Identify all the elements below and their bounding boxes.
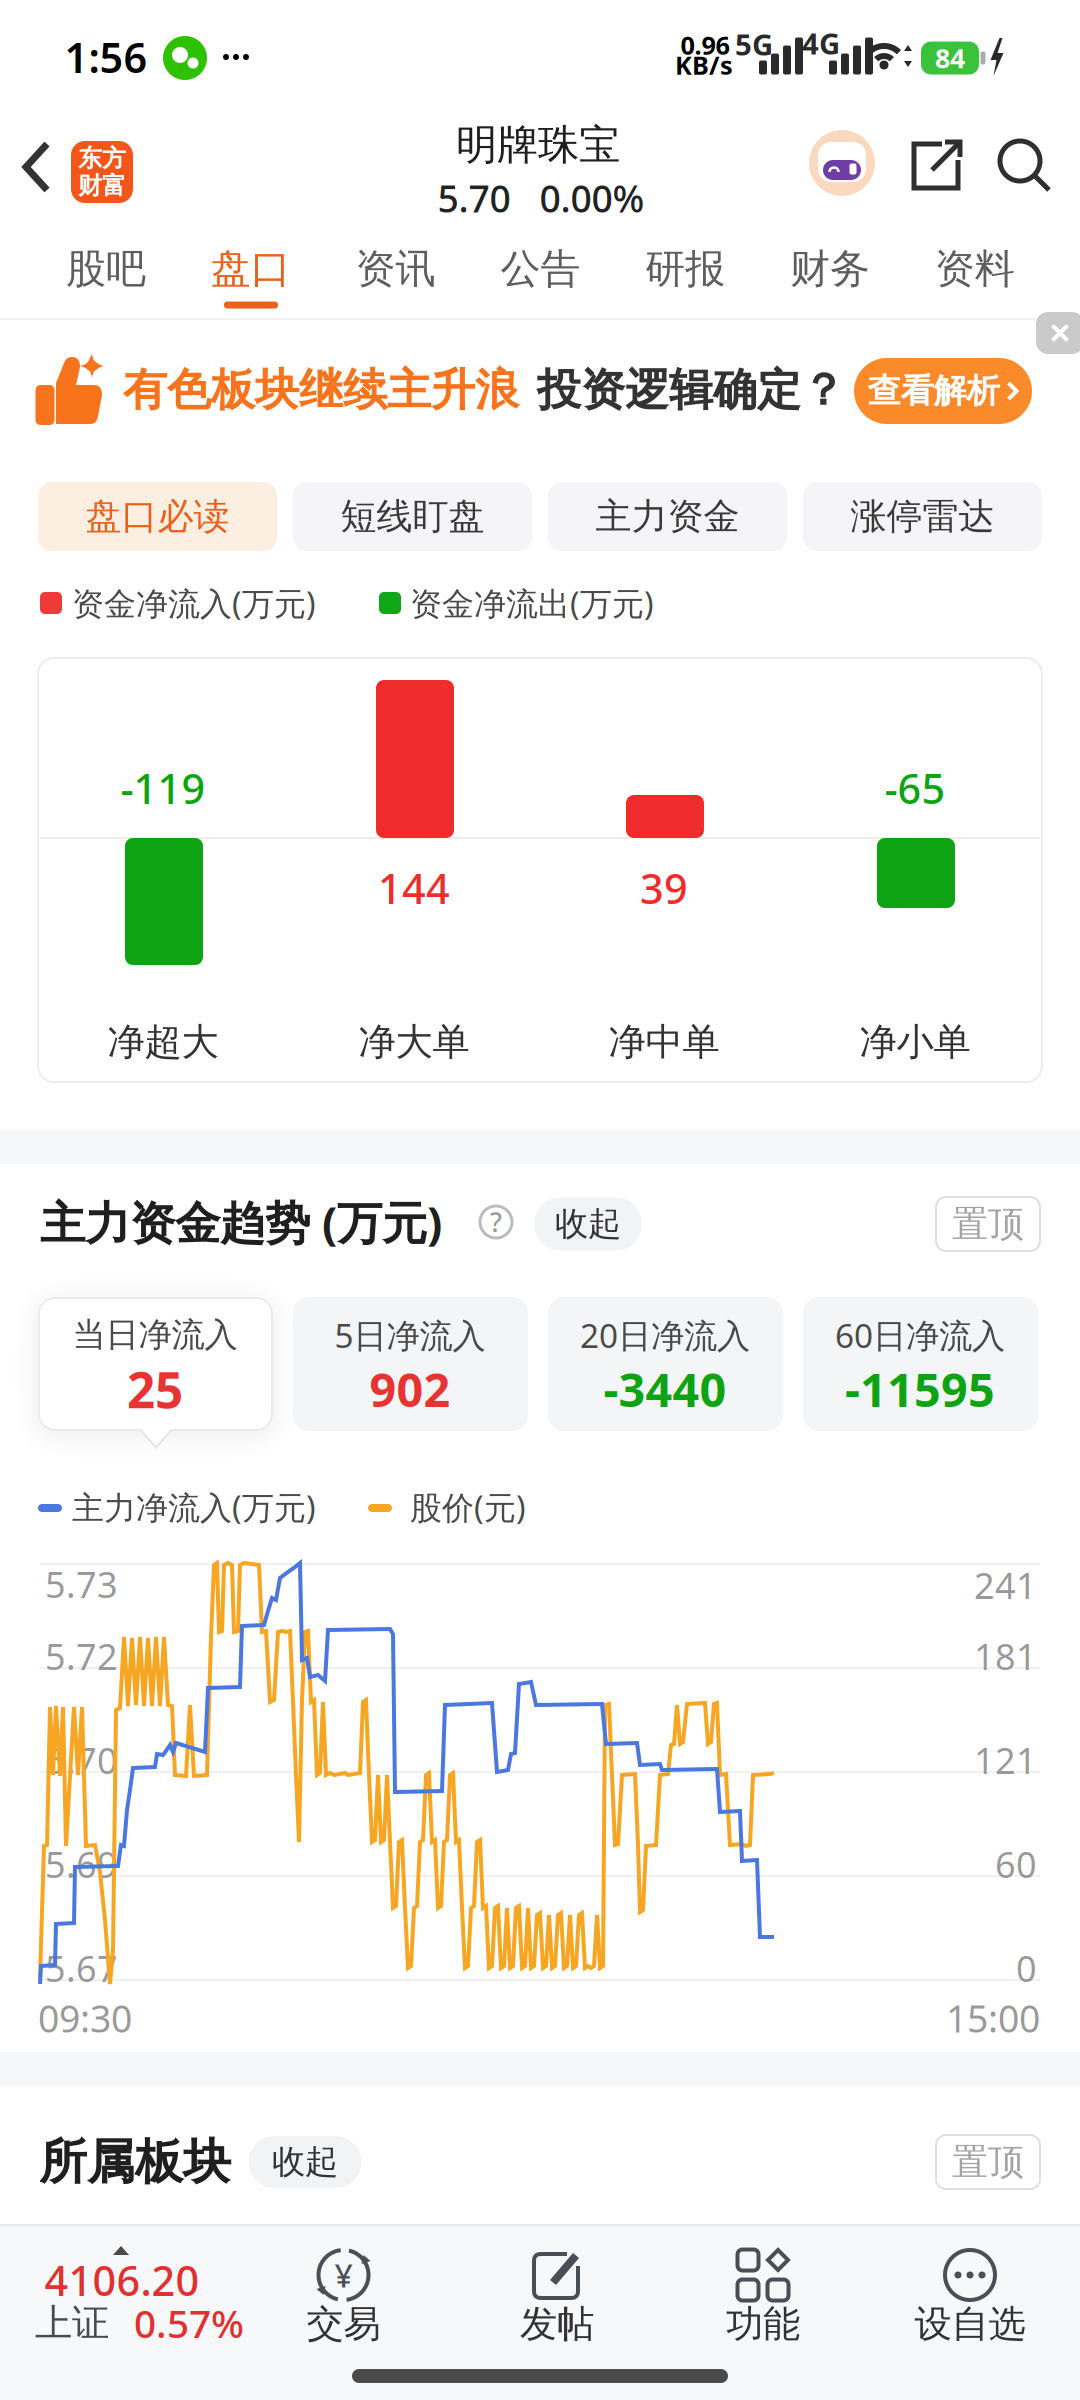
staticText: 4G <box>802 23 840 62</box>
staticText: 5.73 <box>45 1560 118 1608</box>
staticText: 主力资金 <box>595 494 739 539</box>
staticText: 所属板块 <box>39 2132 231 2191</box>
button[interactable]: AI 助手 <box>809 130 875 196</box>
button[interactable]: 盘口 <box>191 229 311 309</box>
button[interactable]: 短线盯盘 <box>293 482 532 551</box>
staticText: 15:00 <box>946 1993 1040 2043</box>
staticText: -11595 <box>845 1358 995 1420</box>
button[interactable]: 盘口必读 <box>38 482 277 551</box>
button[interactable]: ¥ <box>248 2225 438 2375</box>
button[interactable]: 收起 <box>534 1197 642 1250</box>
button[interactable]: 5日净流入 <box>293 1297 528 1431</box>
button[interactable]: 帮助 <box>480 1204 512 1240</box>
button[interactable]: 收起 <box>248 2136 361 2188</box>
staticText: 置顶 <box>952 1202 1024 1246</box>
staticText: -119 <box>120 761 205 815</box>
staticText: 0.00% <box>539 173 644 223</box>
staticText: 盘口 <box>211 244 291 293</box>
button[interactable]: 20日净流入 <box>548 1297 783 1431</box>
button[interactable]: 当日净流入 <box>38 1297 273 1431</box>
staticText: 净中单 <box>608 1019 719 1065</box>
staticText: 20日净流入 <box>580 1313 750 1357</box>
staticText: 短线盯盘 <box>340 494 484 539</box>
staticText: -65 <box>884 761 945 815</box>
staticText: 09:30 <box>38 1993 132 2043</box>
staticText: 25 <box>127 1356 183 1422</box>
staticText: 60日净流入 <box>835 1313 1005 1357</box>
staticText: 902 <box>369 1358 450 1420</box>
staticText: 东方 <box>78 143 126 173</box>
staticText: 0.57% <box>134 2297 244 2349</box>
button[interactable]: Search <box>999 140 1051 192</box>
button[interactable]: Share <box>910 140 962 192</box>
staticText: 净超大 <box>107 1019 218 1065</box>
staticText: 84 <box>935 40 965 76</box>
staticText: 资金净流入(万元) <box>72 582 316 624</box>
button[interactable]: 4106.20 <box>1 2225 269 2400</box>
staticText: 1:56 <box>64 30 147 84</box>
staticText: 财务 <box>790 244 870 293</box>
staticText: 净大单 <box>358 1019 469 1065</box>
button[interactable]: 股吧 <box>46 229 166 309</box>
staticText: 60 <box>995 1840 1037 1888</box>
button[interactable]: 资料 <box>915 229 1035 309</box>
staticText: 241 <box>974 1561 1037 1609</box>
staticText: -3440 <box>603 1358 726 1420</box>
staticText: 设自选 <box>914 2301 1025 2347</box>
staticText: 股价(元) <box>410 1486 526 1528</box>
staticText: 5G <box>735 24 773 63</box>
button[interactable]: 公告 <box>480 229 600 309</box>
button[interactable]: 置顶 <box>936 1197 1040 1251</box>
staticText: 查看解析 <box>867 370 999 411</box>
button[interactable]: 查看解析 <box>854 358 1032 424</box>
staticText: 144 <box>378 861 450 915</box>
staticText: 当日净流入 <box>72 1314 237 1355</box>
staticText: 4106.20 <box>44 2253 199 2307</box>
staticText: 盘口必读 <box>85 494 229 539</box>
staticText: 上证 <box>35 2300 109 2346</box>
staticText: 投资逻辑确定？ <box>537 363 845 417</box>
button[interactable]: 置顶 <box>936 2135 1040 2189</box>
staticText: 收起 <box>272 2141 338 2182</box>
staticText: 181 <box>974 1632 1037 1680</box>
staticText: 资料 <box>935 244 1015 293</box>
staticText: ¥ <box>334 2254 352 2296</box>
staticText: 功能 <box>726 2301 800 2347</box>
button[interactable]: Back <box>23 141 51 193</box>
staticText: 净小单 <box>859 1019 970 1065</box>
button[interactable]: 60日净流入 <box>803 1297 1038 1431</box>
button[interactable]: 功能 <box>668 2225 858 2375</box>
staticText: 股吧 <box>66 244 146 293</box>
staticText: 涨停雷达 <box>850 494 994 539</box>
button[interactable]: 资讯 <box>336 229 456 309</box>
staticText: 5.67 <box>45 1944 118 1992</box>
button[interactable]: 研报 <box>625 229 745 309</box>
staticText: 0 <box>1016 1944 1037 1992</box>
staticText: 置顶 <box>952 2140 1024 2184</box>
staticText: 5.70 <box>45 1736 118 1784</box>
staticText: 5.72 <box>45 1632 118 1680</box>
button[interactable]: 涨停雷达 <box>803 482 1042 551</box>
button[interactable]: 设自选 <box>875 2225 1065 2375</box>
staticText: 明牌珠宝 <box>456 120 620 170</box>
staticText: 公告 <box>500 244 580 293</box>
staticText: 财富 <box>78 171 126 200</box>
staticText: 有色板块继续主升浪 <box>123 363 519 417</box>
staticText: 资讯 <box>356 244 436 293</box>
staticText: 发帖 <box>520 2301 594 2347</box>
staticText: 主力净流入(万元) <box>72 1486 316 1528</box>
button[interactable]: 财务 <box>770 229 890 309</box>
button[interactable]: 主力资金 <box>548 482 787 551</box>
staticText: 0.96 <box>680 28 729 62</box>
button[interactable]: Close <box>1036 312 1080 354</box>
staticText: 资金净流出(万元) <box>410 582 654 624</box>
staticText: 39 <box>640 861 688 915</box>
button[interactable]: 东方财富 <box>71 141 133 203</box>
staticText: ? <box>490 1204 502 1240</box>
staticText: KB/s <box>675 48 733 82</box>
staticText: 交易 <box>306 2301 380 2347</box>
staticText: 5.69 <box>45 1840 118 1888</box>
staticText: 收起 <box>555 1203 621 1244</box>
button[interactable]: 发帖 <box>462 2225 652 2375</box>
staticText: 研报 <box>645 244 725 293</box>
